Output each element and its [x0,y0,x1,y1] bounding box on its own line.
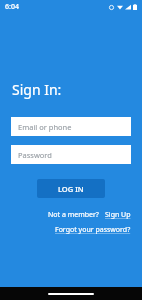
staticText: Email or phone [18,122,72,132]
button[interactable]: LOG IN [37,179,105,198]
other: Alarm [109,5,114,10]
other: Wi-Fi [117,4,123,10]
button[interactable]: Forgot your password? [55,225,131,235]
other: Battery [133,4,137,10]
staticText: Not a member? [48,210,99,220]
staticText: Forgot your password? [55,225,131,235]
staticText: Password [18,150,52,160]
staticText: LOG IN [58,184,84,194]
staticText: 6:04 [5,2,19,12]
button[interactable]: Password [11,145,131,164]
button[interactable]: Sign Up [105,210,131,220]
other: Mobile signal [125,4,131,10]
staticText: Sign In: [12,80,62,99]
staticText: Sign Up [105,210,131,220]
button[interactable]: Email or phone [11,117,131,136]
